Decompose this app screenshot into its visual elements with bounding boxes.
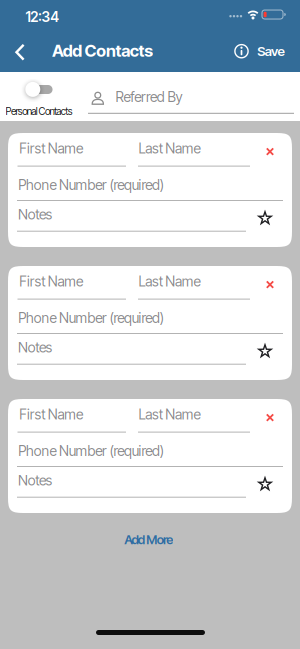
staticText: Last Name	[138, 406, 200, 423]
staticText: Save	[257, 43, 284, 59]
staticText: Last Name	[138, 273, 200, 290]
staticText: Notes	[18, 206, 53, 223]
staticText: Referred By	[115, 88, 182, 105]
staticText: Add More	[124, 532, 173, 547]
staticText: First Name	[19, 140, 83, 157]
staticText: Notes	[18, 339, 53, 356]
staticText: Notes	[18, 472, 53, 489]
staticText: Add Contacts	[52, 41, 153, 61]
staticText: First Name	[19, 406, 83, 423]
staticText: Last Name	[138, 140, 200, 157]
staticText: Phone Number (required)	[18, 309, 164, 326]
staticText: Phone Number (required)	[18, 442, 164, 459]
staticText: Personal Contacts	[5, 105, 73, 117]
staticText: Phone Number (required)	[18, 176, 164, 193]
staticText: 12:34	[25, 8, 59, 25]
staticText: First Name	[19, 273, 83, 290]
